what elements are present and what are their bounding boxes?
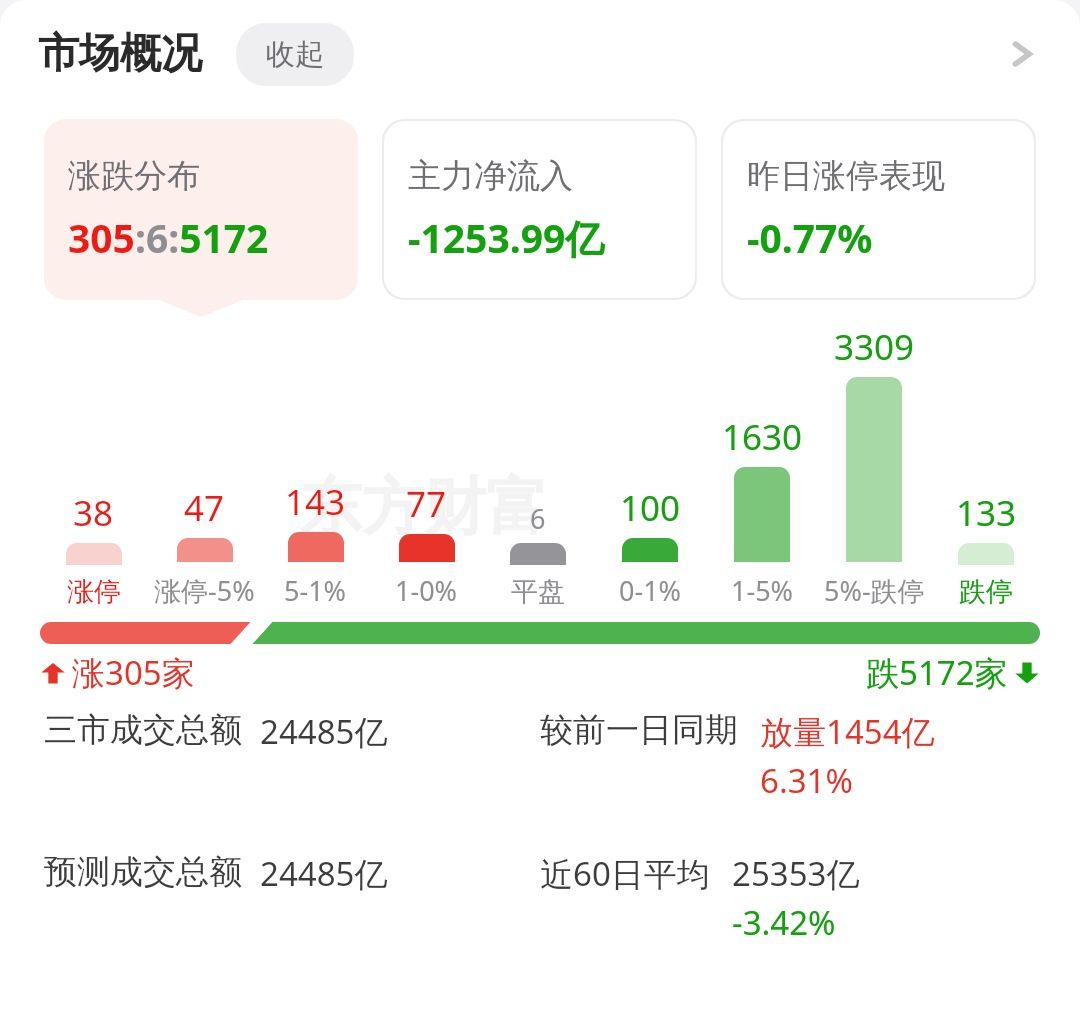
staticText: 主力净流入 <box>408 155 573 197</box>
staticText: 100 <box>620 484 681 532</box>
staticText: 143 <box>285 478 346 526</box>
staticText: -0.77% <box>747 211 873 264</box>
button[interactable]: 涨跌分布 <box>44 119 358 300</box>
staticText: 收起 <box>266 36 324 73</box>
staticText: 涨停-5% <box>154 572 255 609</box>
staticText: 三市成交总额 <box>44 709 242 751</box>
staticText: 平盘 <box>511 575 565 609</box>
staticText: 6.31% <box>760 758 853 803</box>
staticText: 东方财富 <box>300 468 548 546</box>
staticText: 133 <box>956 489 1017 537</box>
staticText: 涨305家 <box>72 650 195 695</box>
staticText: 0-1% <box>619 572 682 609</box>
staticText: 涨停 <box>67 575 121 609</box>
staticText: 305:6:5172 <box>68 211 269 264</box>
staticText: 市场概况 <box>38 28 202 80</box>
staticText: -3.42% <box>732 900 836 945</box>
staticText: 5%-跌停 <box>824 572 925 609</box>
button[interactable]: 昨日涨停表现 <box>723 121 1034 298</box>
staticText: 1-5% <box>731 572 794 609</box>
staticText: 24485亿 <box>260 709 388 754</box>
button[interactable]: 主力净流入 <box>384 121 695 298</box>
staticText: 预测成交总额 <box>44 851 242 893</box>
staticText: 38 <box>73 489 114 537</box>
staticText: 跌5172家 <box>866 650 1008 695</box>
staticText: 近60日平均 <box>540 851 710 896</box>
staticText: 24485亿 <box>260 851 388 896</box>
staticText: 5-1% <box>284 572 347 609</box>
staticText: 47 <box>184 484 225 532</box>
staticText: 1-0% <box>395 572 458 609</box>
staticText: 6 <box>530 500 546 537</box>
staticText: 跌停 <box>959 575 1013 609</box>
staticText: 1630 <box>722 413 803 461</box>
staticText: 涨跌分布 <box>68 155 200 197</box>
button[interactable]: More <box>990 22 1054 86</box>
staticText: -1253.99亿 <box>408 211 605 264</box>
staticText: 放量1454亿 <box>760 709 935 754</box>
staticText: 3309 <box>834 323 915 371</box>
staticText: 25353亿 <box>732 851 860 896</box>
staticText: 较前一日同期 <box>540 709 738 751</box>
button[interactable]: 收起 <box>236 23 354 86</box>
staticText: 昨日涨停表现 <box>747 155 945 197</box>
staticText: 77 <box>406 480 447 528</box>
